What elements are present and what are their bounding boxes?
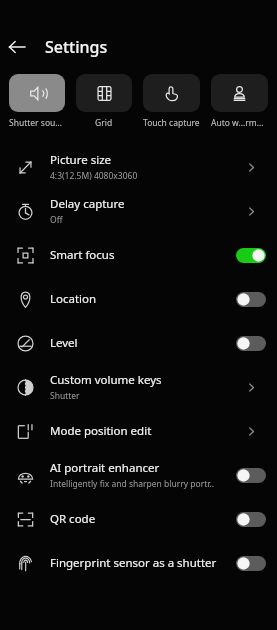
button[interactable]: Back (0, 30, 34, 64)
staticText: 4:3(12.5M) 4080x3060 (50, 170, 138, 182)
staticText: Custom volume keys (50, 372, 162, 388)
staticText: Touch capture (143, 117, 200, 129)
button[interactable]: Touch capture (143, 74, 200, 129)
staticText: Off (50, 214, 63, 226)
staticText: Level (50, 335, 78, 351)
button[interactable]: Picture size (0, 145, 277, 189)
staticText: Delay capture (50, 196, 125, 212)
staticText: Grid (95, 117, 113, 129)
staticText: Location (50, 291, 97, 307)
staticText: Smart focus (50, 247, 115, 263)
staticText: Picture size (50, 152, 112, 168)
staticText: Intelligently fix and sharpen blurry por… (50, 478, 214, 490)
staticText: AI portrait enhancer (50, 460, 160, 476)
staticText: QR code (50, 511, 96, 527)
button[interactable]: QR code (0, 497, 277, 541)
button[interactable]: Level (0, 321, 277, 365)
button[interactable]: Location (0, 277, 277, 321)
staticText: Shutter sound (9, 117, 65, 129)
button[interactable]: Custom volume keys (0, 365, 277, 409)
staticText: Shutter (50, 390, 80, 402)
button[interactable]: Shutter sound (9, 74, 65, 129)
button[interactable]: Fingerprint sensor as a shutter (0, 541, 277, 585)
button[interactable]: Delay capture (0, 189, 277, 233)
staticText: Mode position edit (50, 423, 152, 439)
staticText: Auto w...rmark (211, 117, 268, 129)
staticText: Settings (45, 36, 108, 58)
staticText: Fingerprint sensor as a shutter (50, 555, 217, 571)
button[interactable]: AI portrait enhancer (0, 453, 277, 497)
button[interactable]: Smart focus (0, 233, 277, 277)
button[interactable]: Mode position edit (0, 409, 277, 453)
button[interactable]: Auto w...rmark (211, 74, 268, 129)
button[interactable]: Grid (76, 74, 132, 129)
